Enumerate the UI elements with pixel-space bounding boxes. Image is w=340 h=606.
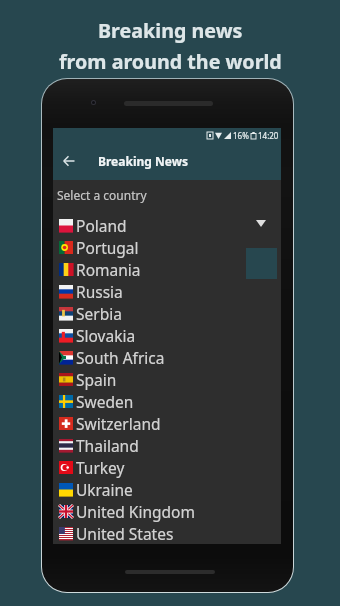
staticText: Breaking news — [98, 17, 243, 44]
staticText: Ukraine — [76, 479, 133, 500]
button[interactable]: Thailand — [53, 434, 281, 456]
button[interactable]: Poland — [53, 214, 281, 236]
button[interactable]: Turkey — [53, 456, 281, 478]
staticText: Romania — [76, 259, 141, 280]
staticText: from around the world — [59, 48, 282, 75]
staticText: United Kingdom — [76, 501, 195, 522]
staticText: United States — [76, 523, 174, 544]
staticText: Portugal — [76, 237, 139, 258]
staticText: Select a country — [57, 187, 147, 203]
staticText: Slovakia — [76, 325, 136, 346]
button[interactable]: United Kingdom — [53, 500, 281, 522]
button[interactable]: Switzerland — [53, 412, 281, 434]
staticText: 16% — [233, 130, 249, 141]
button[interactable]: Romania — [53, 258, 281, 280]
button[interactable]: Slovakia — [53, 324, 281, 346]
staticText: Serbia — [76, 303, 122, 324]
staticText: South Africa — [76, 347, 165, 368]
staticText: Poland — [76, 215, 127, 236]
button[interactable]: United States — [53, 522, 281, 544]
button[interactable]: Spain — [53, 368, 281, 390]
staticText: Russia — [76, 281, 123, 302]
button[interactable]: Ukraine — [53, 478, 281, 500]
button[interactable]: South Africa — [53, 346, 281, 368]
staticText: Thailand — [76, 435, 139, 456]
staticText: Spain — [76, 369, 117, 390]
staticText: Switzerland — [76, 413, 161, 434]
staticText: Turkey — [76, 457, 125, 478]
button[interactable]: Serbia — [53, 302, 281, 324]
button[interactable]: Portugal — [53, 236, 281, 258]
button[interactable]: Russia — [53, 280, 281, 302]
staticText: 14:20 — [258, 130, 279, 141]
button[interactable]: Back — [59, 151, 79, 171]
button[interactable]: Sweden — [53, 390, 281, 412]
staticText: Breaking News — [98, 153, 188, 169]
staticText: Sweden — [76, 391, 134, 412]
